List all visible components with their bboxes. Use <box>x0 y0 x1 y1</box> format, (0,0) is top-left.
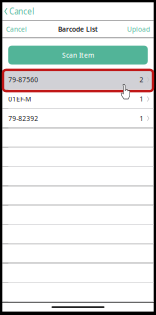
staticText: 01EF-M <box>8 95 31 103</box>
button[interactable]: Cancel <box>2 22 31 37</box>
staticText: Cancel <box>6 25 27 34</box>
button[interactable]: Scan Item <box>8 46 148 64</box>
staticText: Upload <box>127 25 150 34</box>
staticText: Scan Item <box>62 51 94 60</box>
staticText: Barcode List <box>58 25 98 34</box>
staticText: 79-82392 <box>8 114 38 123</box>
staticText: Cancel <box>9 6 34 17</box>
staticText: 79-87560 <box>8 75 38 84</box>
button[interactable]: Cancel <box>2 2 38 20</box>
button[interactable]: Upload <box>123 22 154 37</box>
button[interactable]: 01EF-M <box>2 90 154 108</box>
staticText: 1 <box>139 95 143 103</box>
staticText: 2 <box>139 75 143 84</box>
staticText: 1 <box>139 114 143 123</box>
button[interactable]: 79-87560 <box>2 70 154 89</box>
button[interactable]: 79-82392 <box>2 109 154 128</box>
